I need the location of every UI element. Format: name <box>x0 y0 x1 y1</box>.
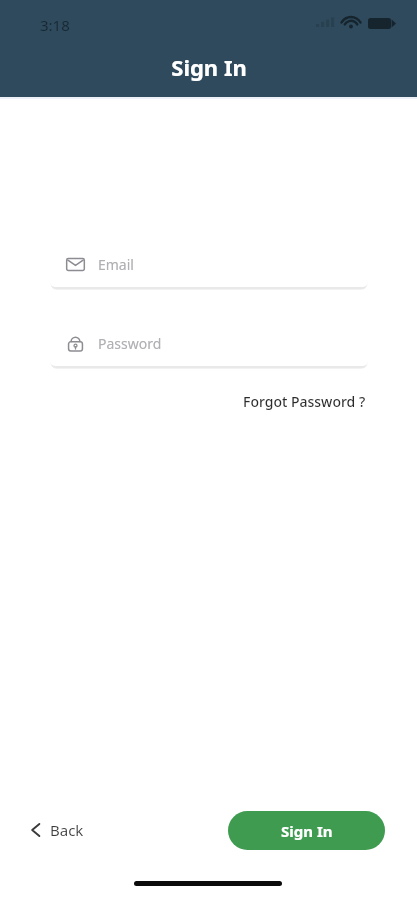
button[interactable]: Sign In <box>228 811 385 850</box>
staticText: Email <box>98 255 134 274</box>
button[interactable]: Forgot Password ? <box>241 388 368 415</box>
staticText: Forgot Password ? <box>243 392 366 411</box>
button[interactable]: Email <box>50 241 368 287</box>
staticText: Sign In <box>281 821 333 841</box>
button[interactable]: Back <box>22 812 92 848</box>
staticText: 3:18 <box>40 15 70 35</box>
button[interactable]: Password <box>50 320 368 366</box>
staticText: Back <box>50 820 84 840</box>
staticText: Password <box>98 334 162 353</box>
staticText: Sign In <box>171 52 247 82</box>
